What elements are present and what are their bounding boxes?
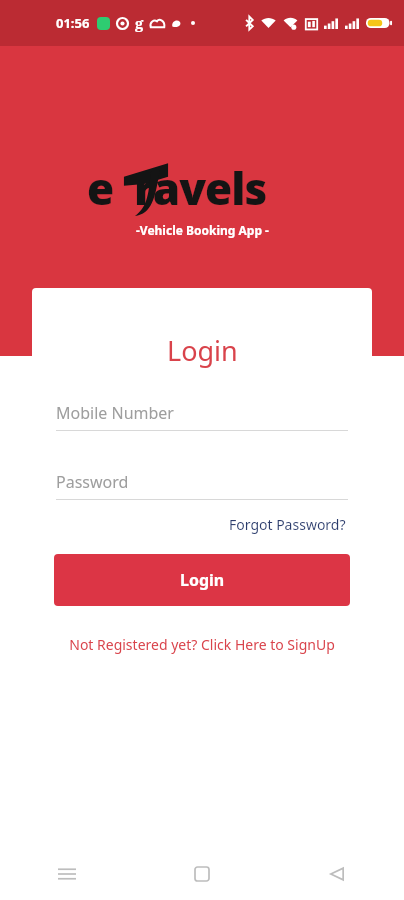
staticText: Password bbox=[56, 471, 129, 493]
button[interactable]: Not Registered yet? Click Here to SignUp bbox=[52, 633, 352, 656]
staticText: Forgot Password? bbox=[229, 515, 346, 534]
staticText: Not Registered yet? Click Here to SignUp bbox=[52, 635, 352, 654]
button[interactable]: Recent apps bbox=[0, 848, 134, 900]
staticText: e ravels bbox=[87, 158, 267, 214]
button[interactable]: Login bbox=[54, 554, 350, 606]
button[interactable]: Back bbox=[269, 848, 404, 900]
staticText: -Vehicle Booking App - bbox=[136, 222, 269, 238]
staticText: Login bbox=[180, 569, 225, 591]
button[interactable]: Mobile Number bbox=[56, 402, 348, 431]
staticText: Login bbox=[167, 332, 238, 369]
button[interactable]: Password bbox=[56, 471, 348, 500]
staticText: Mobile Number bbox=[56, 402, 174, 424]
button[interactable]: Home bbox=[134, 848, 269, 900]
button[interactable]: Forgot Password? bbox=[227, 512, 348, 537]
staticText: g bbox=[135, 13, 144, 33]
staticText: 01:56 bbox=[56, 14, 90, 32]
